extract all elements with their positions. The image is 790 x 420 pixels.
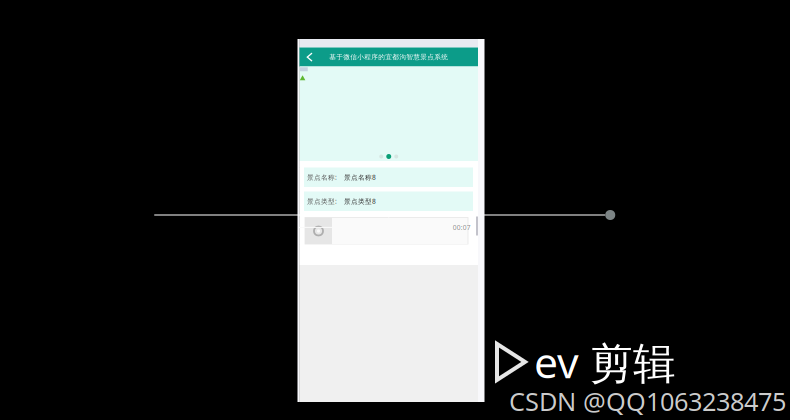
staticText: ev 剪辑: [534, 333, 676, 390]
staticText: 00:07: [453, 223, 471, 232]
button[interactable]: Play: [305, 217, 332, 244]
staticText: 景点类型:: [307, 197, 337, 206]
button[interactable]: Back: [299, 47, 317, 66]
staticText: 景点类型8: [344, 197, 376, 206]
staticText: 基于微信小程序的宜都沟智慧景点系统: [329, 53, 448, 61]
staticText: 景点名称8: [344, 173, 376, 182]
staticText: CSDN @QQ1063238475: [509, 384, 786, 418]
staticText: 景点名称:: [307, 173, 337, 182]
